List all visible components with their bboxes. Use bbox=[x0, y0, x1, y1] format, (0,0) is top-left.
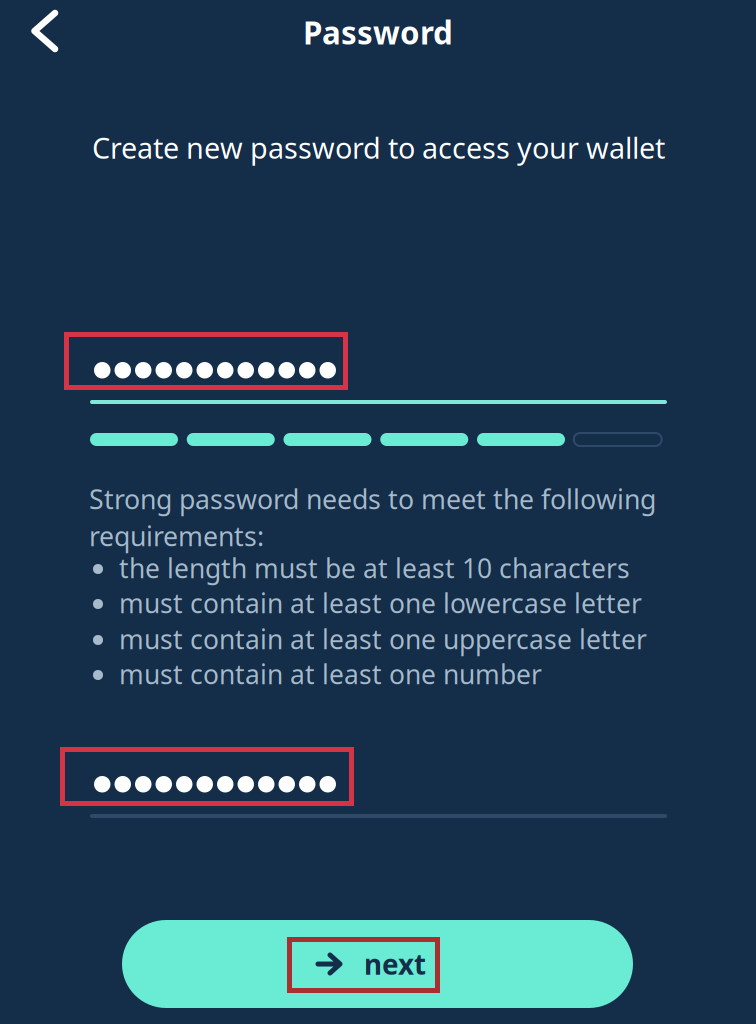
staticText: next bbox=[364, 945, 426, 983]
staticText: requirements: bbox=[89, 518, 264, 554]
staticText: the length must be at least 10 character… bbox=[119, 550, 630, 586]
button[interactable]: Back bbox=[13, 0, 75, 59]
staticText: Strong password needs to meet the follow… bbox=[89, 481, 656, 517]
button[interactable]: Password bbox=[90, 343, 667, 405]
staticText: must contain at least one uppercase lett… bbox=[119, 621, 647, 657]
button[interactable]: Confirm password bbox=[90, 757, 667, 819]
staticText: Create new password to access your walle… bbox=[92, 128, 665, 167]
button[interactable]: next bbox=[122, 920, 633, 1008]
staticText: must contain at least one lowercase lett… bbox=[119, 585, 642, 621]
staticText: Password bbox=[303, 11, 453, 54]
staticText: must contain at least one number bbox=[119, 656, 542, 692]
